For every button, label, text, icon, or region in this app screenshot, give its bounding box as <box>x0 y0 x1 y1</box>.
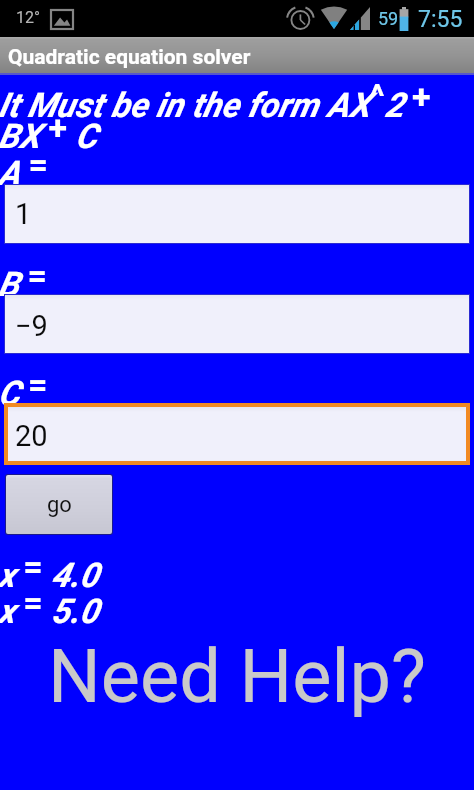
staticText: B = <box>0 255 47 304</box>
staticText: Quadratic equation solver <box>8 45 251 70</box>
button[interactable] <box>5 295 469 353</box>
staticText: It Must be in the form AX^2 + <box>0 76 431 125</box>
staticText: 59 <box>378 8 399 29</box>
staticText: BX + C <box>0 107 97 156</box>
staticText: A = <box>0 144 49 193</box>
staticText: 1 <box>15 197 32 231</box>
button[interactable] <box>8 407 466 461</box>
button[interactable]: Need Help? <box>0 633 474 717</box>
button[interactable]: go <box>6 475 112 534</box>
staticText: −9 <box>15 309 48 343</box>
staticText: x = 4.0 <box>0 546 99 595</box>
staticText: Need Help? <box>48 633 426 717</box>
staticText: C = <box>0 364 48 413</box>
staticText: 7:55 <box>418 6 463 33</box>
staticText: 12° <box>16 8 40 27</box>
button[interactable] <box>5 185 469 243</box>
staticText: x = 5.0 <box>0 582 99 631</box>
staticText: 20 <box>15 419 48 453</box>
staticText: go <box>47 492 72 518</box>
